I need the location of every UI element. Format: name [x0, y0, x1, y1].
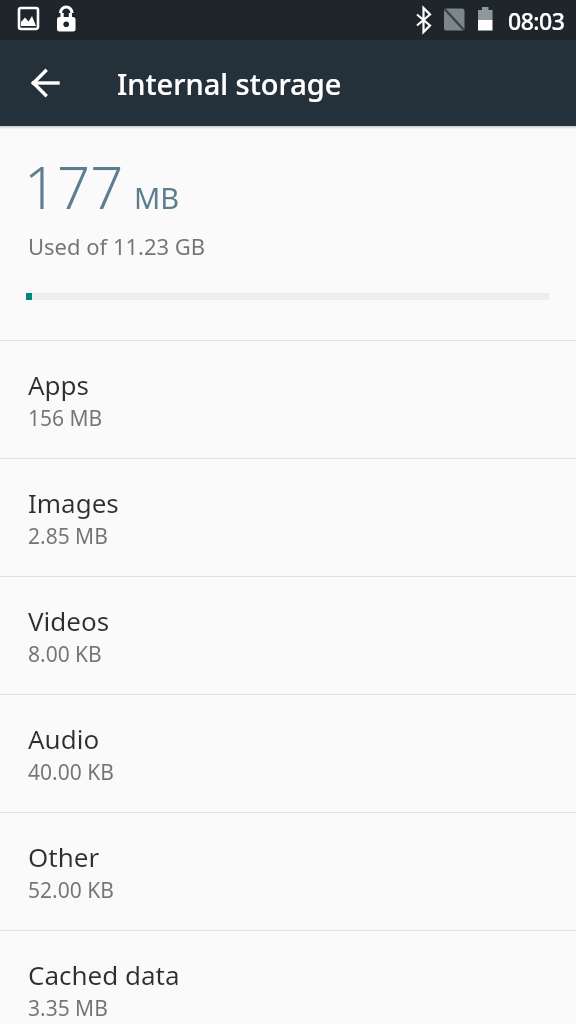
staticText: Videos [28, 603, 110, 638]
staticText: 40.00 KB [28, 758, 114, 787]
button[interactable]: Audio [0, 695, 576, 812]
staticText: Other [28, 839, 100, 874]
button[interactable]: Videos [0, 577, 576, 694]
staticText: 52.00 KB [28, 876, 114, 905]
staticText: Images [28, 485, 119, 520]
button[interactable]: Apps [0, 341, 576, 458]
staticText: 8.00 KB [28, 640, 102, 669]
button[interactable] [18, 55, 74, 111]
staticText: 08:03 [508, 5, 565, 36]
button[interactable]: Other [0, 813, 576, 930]
staticText: 2.85 MB [28, 522, 108, 551]
staticText: MB [134, 178, 180, 217]
staticText: 177 [24, 147, 124, 226]
button[interactable]: Images [0, 459, 576, 576]
staticText: 156 MB [28, 404, 103, 433]
staticText: Audio [28, 721, 100, 756]
staticText: Cached data [28, 957, 180, 992]
staticText: 3.35 MB [28, 994, 108, 1023]
staticText: Used of 11.23 GB [28, 231, 206, 261]
staticText: Internal storage [117, 64, 342, 103]
button[interactable]: Cached data [0, 931, 576, 1024]
staticText: Apps [28, 367, 90, 402]
